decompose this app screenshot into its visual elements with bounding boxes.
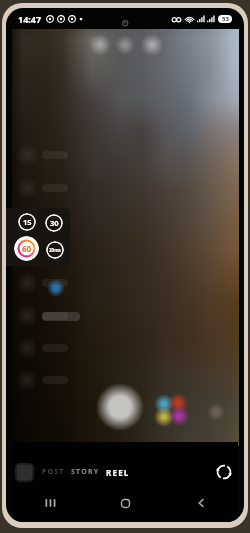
button[interactable]: Recents <box>12 488 88 518</box>
staticText: 60 <box>22 243 32 254</box>
staticText: 53 <box>222 15 229 23</box>
button[interactable]: 15 <box>18 213 36 231</box>
button[interactable]: 60 <box>14 236 39 261</box>
button[interactable]: 30 <box>45 214 63 232</box>
button[interactable]: Home <box>88 488 163 518</box>
button[interactable]: 20ms <box>46 241 64 259</box>
staticText: 20ms <box>49 247 61 253</box>
button[interactable]: Flip camera <box>216 464 232 480</box>
button[interactable]: Back <box>163 488 238 518</box>
button[interactable]: REEL <box>106 467 130 478</box>
staticText: 14:47 <box>18 13 42 25</box>
button[interactable]: STORY <box>71 467 100 477</box>
staticText: 30 <box>50 218 59 228</box>
button[interactable]: POST <box>42 467 65 477</box>
staticText: 15 <box>23 217 32 227</box>
button[interactable]: Gallery <box>15 463 34 482</box>
